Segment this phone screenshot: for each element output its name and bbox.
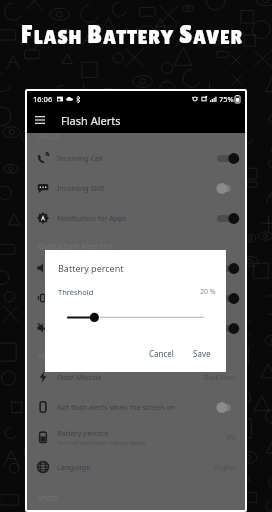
staticText: Vibrate Mode	[57, 293, 102, 303]
staticText: Battery percent	[57, 428, 109, 438]
button[interactable]: Language	[27, 452, 245, 482]
button[interactable]: Toggle Silent Mode	[217, 322, 237, 335]
staticText: Not flash alerts when the screen on	[57, 402, 175, 412]
staticText: Incoming Call	[57, 153, 103, 163]
button[interactable]: Incoming Call	[27, 143, 245, 173]
button[interactable]: Toggle Notification for Apps	[217, 212, 237, 225]
staticText: Flash Module	[57, 372, 102, 382]
button[interactable]: Battery percent	[27, 422, 245, 452]
button[interactable]: Cancel	[148, 346, 175, 361]
staticText: Language	[57, 462, 91, 472]
button[interactable]: Silent Mode	[27, 313, 245, 343]
staticText: SPEED	[38, 494, 58, 503]
button[interactable]: Incoming SMS	[27, 173, 245, 203]
button[interactable]: Flash Module	[27, 362, 245, 392]
button[interactable]: Toggle Vibrate Mode	[217, 292, 237, 305]
button[interactable]: Notification for Apps	[27, 203, 245, 233]
staticText: ENABLE Flash Alerts FOR	[38, 242, 113, 251]
button[interactable]: Not flash alerts when the screen on	[27, 392, 245, 422]
button[interactable]: Toggle Normal Mode	[217, 262, 237, 275]
staticText: ADVANCED	[38, 351, 73, 360]
staticText: AVER	[193, 26, 243, 49]
staticText: S	[179, 20, 193, 49]
staticText: 16:06	[33, 94, 53, 104]
staticText: Cancel	[149, 348, 174, 359]
button[interactable]: Toggle Incoming SMS	[217, 182, 237, 195]
staticText: STATUS	[38, 132, 61, 141]
staticText: B	[87, 20, 103, 49]
staticText: 75%	[219, 94, 234, 104]
button[interactable]: Save	[191, 346, 212, 361]
staticText: ATTERY	[103, 26, 179, 49]
staticText: 0%	[227, 433, 237, 442]
staticText: Incoming SMS	[57, 183, 105, 193]
button[interactable]: Normal Mode	[27, 253, 245, 283]
staticText: Battery percent	[58, 262, 124, 274]
staticText: Turn off flash when battery below	[57, 439, 146, 447]
staticText: Threshold	[58, 287, 94, 297]
button[interactable]: Vibrate Mode	[27, 283, 245, 313]
staticText: 20 %	[200, 287, 216, 297]
staticText: Flash Alerts	[61, 113, 121, 128]
staticText: English	[214, 463, 237, 472]
staticText: LASH	[34, 26, 87, 49]
button[interactable]: Toggle Not flash alerts when the screen …	[217, 401, 237, 414]
staticText: Normal Mode	[57, 263, 103, 273]
button[interactable]: Toggle Incoming Call	[217, 152, 237, 165]
staticText: Back Flash	[204, 373, 237, 382]
staticText: F	[21, 20, 34, 49]
staticText: Save	[193, 348, 211, 359]
button[interactable]: Open navigation menu	[27, 107, 53, 133]
staticText: Notification for Apps	[57, 213, 126, 223]
